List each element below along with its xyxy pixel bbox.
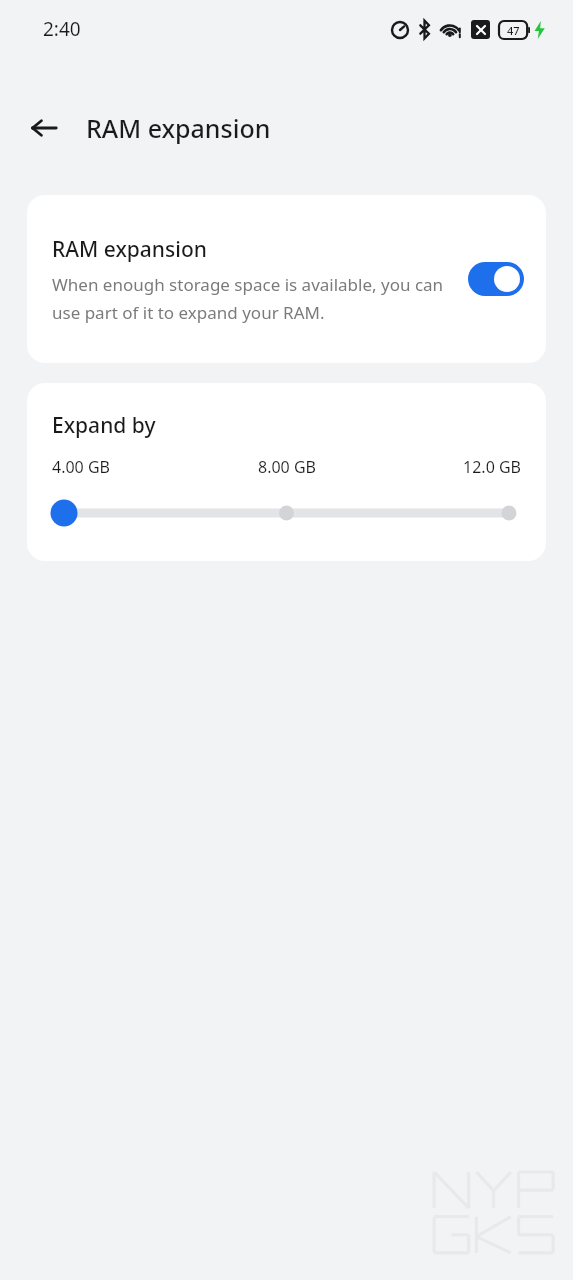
button[interactable]: Back <box>20 104 68 152</box>
staticText: When enough storage space is available, … <box>52 273 458 324</box>
staticText: 2:40 <box>43 16 81 42</box>
staticText: 12.0 GB <box>365 456 521 478</box>
staticText: 4.00 GB <box>52 456 209 478</box>
staticText: RAM expansion <box>86 111 271 145</box>
button[interactable]: Expand by slider <box>52 497 521 529</box>
staticText: 47 <box>507 23 520 38</box>
button[interactable]: RAM expansion <box>27 195 546 363</box>
staticText: Expand by <box>52 411 156 440</box>
staticText: RAM expansion <box>52 235 207 264</box>
staticText: 8.00 GB <box>209 456 365 478</box>
button[interactable]: RAM expansion toggle <box>468 262 524 296</box>
